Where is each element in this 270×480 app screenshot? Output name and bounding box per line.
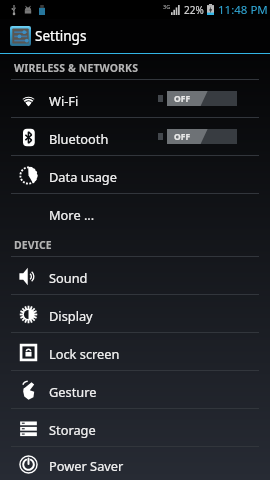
- staticText: Data usage: [49, 168, 117, 185]
- button[interactable]: Power Saver: [0, 447, 270, 480]
- staticText: 11:48 PM: [218, 2, 268, 18]
- staticText: OFF: [174, 131, 191, 143]
- staticText: DEVICE: [14, 238, 52, 252]
- button[interactable]: Wireless toggle, off: [167, 129, 237, 144]
- staticText: Wi-Fi: [49, 92, 79, 109]
- staticText: Gesture: [49, 383, 97, 400]
- staticText: More ...: [49, 206, 95, 223]
- button[interactable]: Sound: [0, 257, 270, 294]
- staticText: Sound: [49, 269, 88, 286]
- staticText: Storage: [49, 421, 96, 438]
- button[interactable]: Wi-Fi: [0, 80, 270, 117]
- staticText: Power Saver: [49, 457, 124, 474]
- staticText: Display: [49, 307, 93, 324]
- button[interactable]: Data usage: [0, 156, 270, 193]
- button[interactable]: Storage: [0, 409, 270, 446]
- staticText: Settings: [35, 27, 87, 45]
- staticText: WIRELESS & NETWORKS: [14, 61, 139, 75]
- button[interactable]: Wireless toggle, off: [167, 91, 237, 106]
- button[interactable]: More ...: [0, 194, 270, 231]
- staticText: Bluetooth: [49, 130, 109, 147]
- staticText: 3G: [163, 3, 171, 10]
- button[interactable]: Display: [0, 295, 270, 332]
- staticText: OFF: [174, 93, 191, 105]
- staticText: 22%: [184, 3, 204, 17]
- button[interactable]: Settings: [0, 19, 270, 53]
- button[interactable]: Bluetooth: [0, 118, 270, 155]
- button[interactable]: Gesture: [0, 371, 270, 408]
- button[interactable]: Lock screen: [0, 333, 270, 370]
- staticText: Lock screen: [49, 345, 120, 362]
